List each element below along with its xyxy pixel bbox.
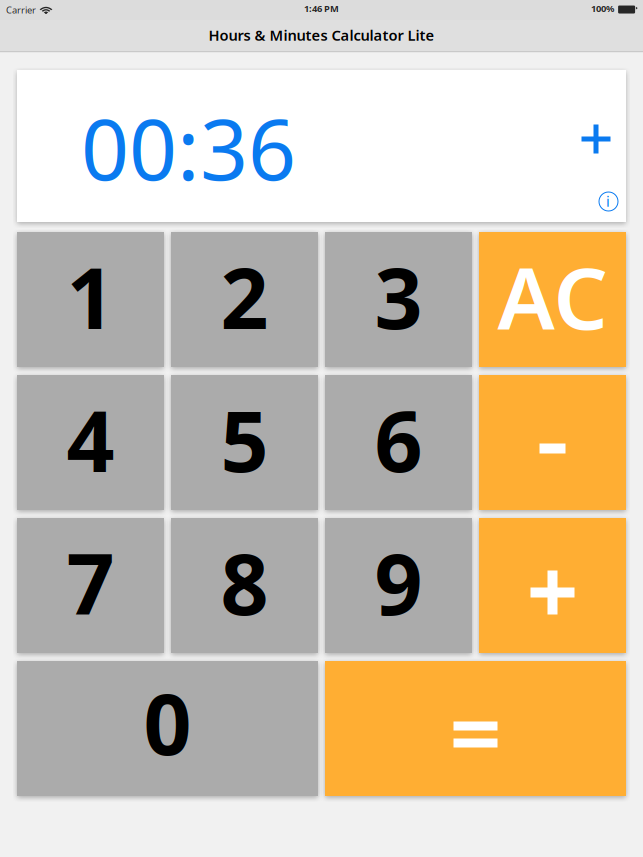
button[interactable]: 3 xyxy=(325,232,472,367)
staticText: i xyxy=(606,191,610,211)
staticText: 00:36 xyxy=(81,92,296,203)
staticText: AC xyxy=(497,240,607,353)
staticText: 9 xyxy=(374,527,422,638)
staticText: 2 xyxy=(220,241,268,352)
button[interactable]: Equals xyxy=(325,661,626,796)
button[interactable]: 9 xyxy=(325,518,472,653)
staticText: 100% xyxy=(591,2,614,15)
button[interactable]: 8 xyxy=(171,518,318,653)
button[interactable]: 1 xyxy=(17,232,164,367)
staticText: 5 xyxy=(220,384,268,495)
button[interactable]: 7 xyxy=(17,518,164,653)
staticText: Hours & Minutes Calculator Lite xyxy=(208,25,434,45)
button[interactable]: AC xyxy=(479,232,626,367)
button[interactable]: Add entry xyxy=(574,117,618,161)
staticText: 3 xyxy=(374,241,422,352)
staticText: 0 xyxy=(143,667,191,778)
button[interactable]: Plus xyxy=(479,518,626,653)
button[interactable]: 0 xyxy=(17,661,318,796)
button[interactable]: 4 xyxy=(17,375,164,510)
button[interactable]: 5 xyxy=(171,375,318,510)
staticText: Carrier xyxy=(6,4,36,16)
button[interactable]: 6 xyxy=(325,375,472,510)
staticText: 4 xyxy=(66,384,114,495)
staticText: 1 xyxy=(66,241,114,352)
staticText: 1:46 PM xyxy=(304,2,339,15)
staticText: 7 xyxy=(66,527,114,638)
staticText: 6 xyxy=(374,384,422,495)
staticText: 8 xyxy=(220,527,268,638)
button[interactable]: Minus xyxy=(479,375,626,510)
button[interactable]: 2 xyxy=(171,232,318,367)
button[interactable]: Info xyxy=(599,192,618,211)
